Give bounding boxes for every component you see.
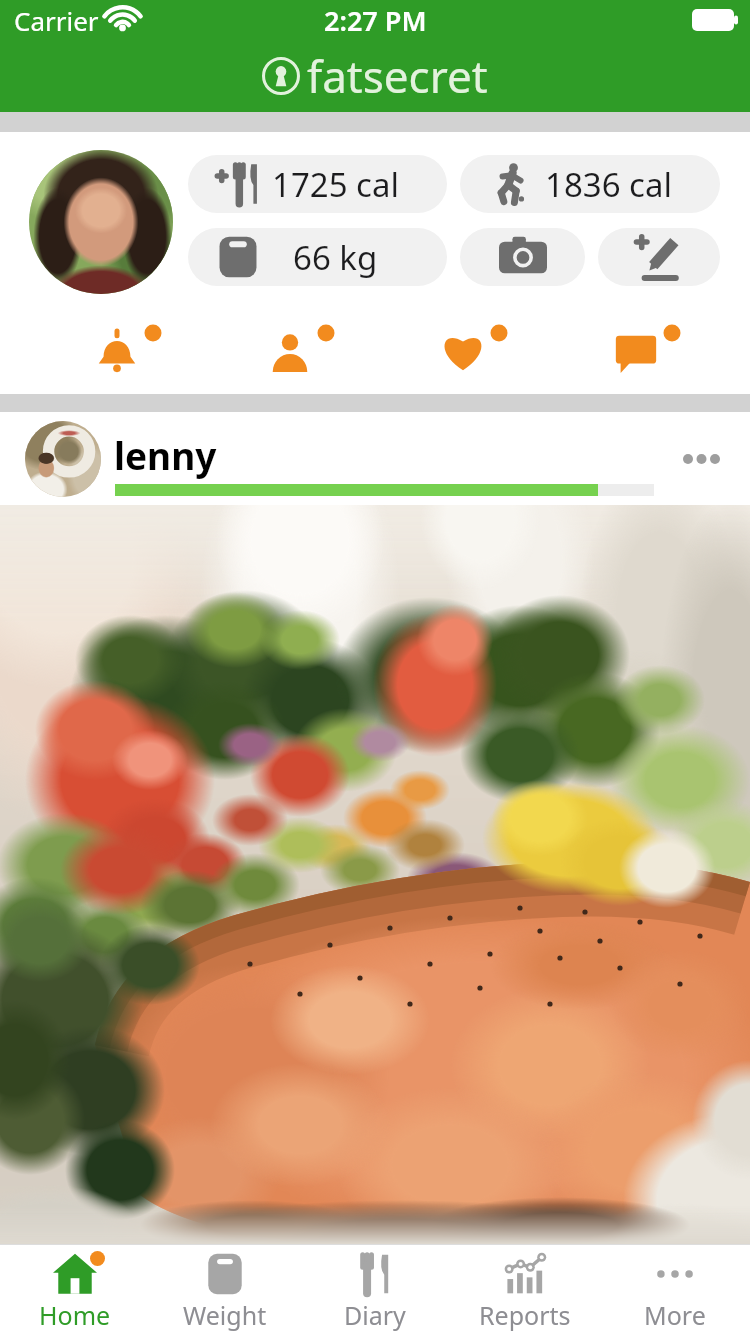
button[interactable]: Diary [300, 1245, 450, 1334]
button[interactable] [682, 453, 722, 465]
button[interactable]: Reports [450, 1245, 600, 1334]
staticText: fatsecret [307, 46, 488, 106]
button[interactable] [598, 228, 720, 286]
button[interactable] [460, 228, 585, 286]
staticText: Weight [183, 1298, 267, 1332]
button[interactable] [603, 324, 681, 380]
button[interactable]: lenny [0, 412, 750, 505]
button[interactable] [29, 150, 173, 294]
button[interactable] [257, 324, 335, 380]
staticText: Carrier [14, 3, 99, 38]
button[interactable] [430, 324, 508, 380]
staticText: 2:27 PM [324, 2, 427, 39]
staticText: Diary [344, 1298, 406, 1332]
staticText: 66 kg [293, 235, 378, 280]
button[interactable]: 1836 cal [460, 155, 720, 213]
button[interactable]: Home [0, 1245, 150, 1334]
button[interactable]: 66 kg [188, 228, 447, 286]
staticText: Reports [479, 1298, 571, 1332]
staticText: More [644, 1298, 706, 1332]
staticText: 1836 cal [545, 162, 672, 207]
staticText: lenny [114, 430, 217, 480]
button[interactable]: 1725 cal [188, 155, 447, 213]
staticText: 1725 cal [272, 162, 399, 207]
staticText: Home [39, 1298, 111, 1332]
button[interactable] [84, 324, 162, 380]
button[interactable] [0, 505, 750, 1244]
button[interactable]: Weight [150, 1245, 300, 1334]
button[interactable]: More [600, 1245, 750, 1334]
